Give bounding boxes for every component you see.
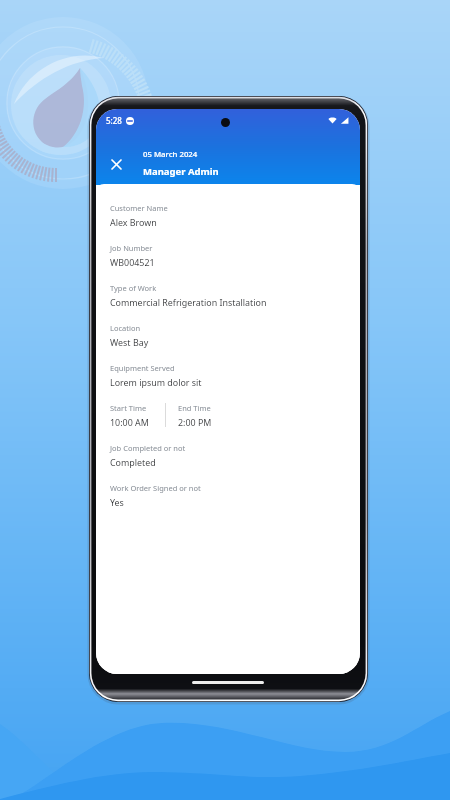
staticText: Lorem ipsum dolor sit [110, 376, 202, 388]
staticText: 2:00 PM [178, 416, 212, 428]
staticText: WB004521 [110, 256, 155, 268]
staticText: Type of Work [110, 283, 157, 293]
staticText: Manager Admin [143, 165, 219, 178]
staticText: Commercial Refrigeration Installation [110, 296, 267, 308]
staticText: Completed [110, 456, 156, 468]
staticText: Alex Brown [110, 216, 157, 228]
staticText: Yes [110, 496, 124, 508]
staticText: Job Number [110, 243, 153, 253]
staticText: Work Order Signed or not [110, 483, 201, 493]
staticText: Start Time [110, 403, 147, 413]
staticText: 5:28 [106, 115, 122, 126]
staticText: 10:00 AM [110, 416, 149, 428]
staticText: West Bay [110, 336, 149, 348]
staticText: Customer Name [110, 203, 168, 213]
staticText: Job Completed or not [110, 443, 186, 453]
button[interactable]: Close [105, 153, 127, 175]
staticText: 05 March 2024 [143, 149, 198, 160]
staticText: Equipment Served [110, 363, 175, 373]
staticText: Location [110, 323, 141, 333]
staticText: End Time [178, 403, 211, 413]
